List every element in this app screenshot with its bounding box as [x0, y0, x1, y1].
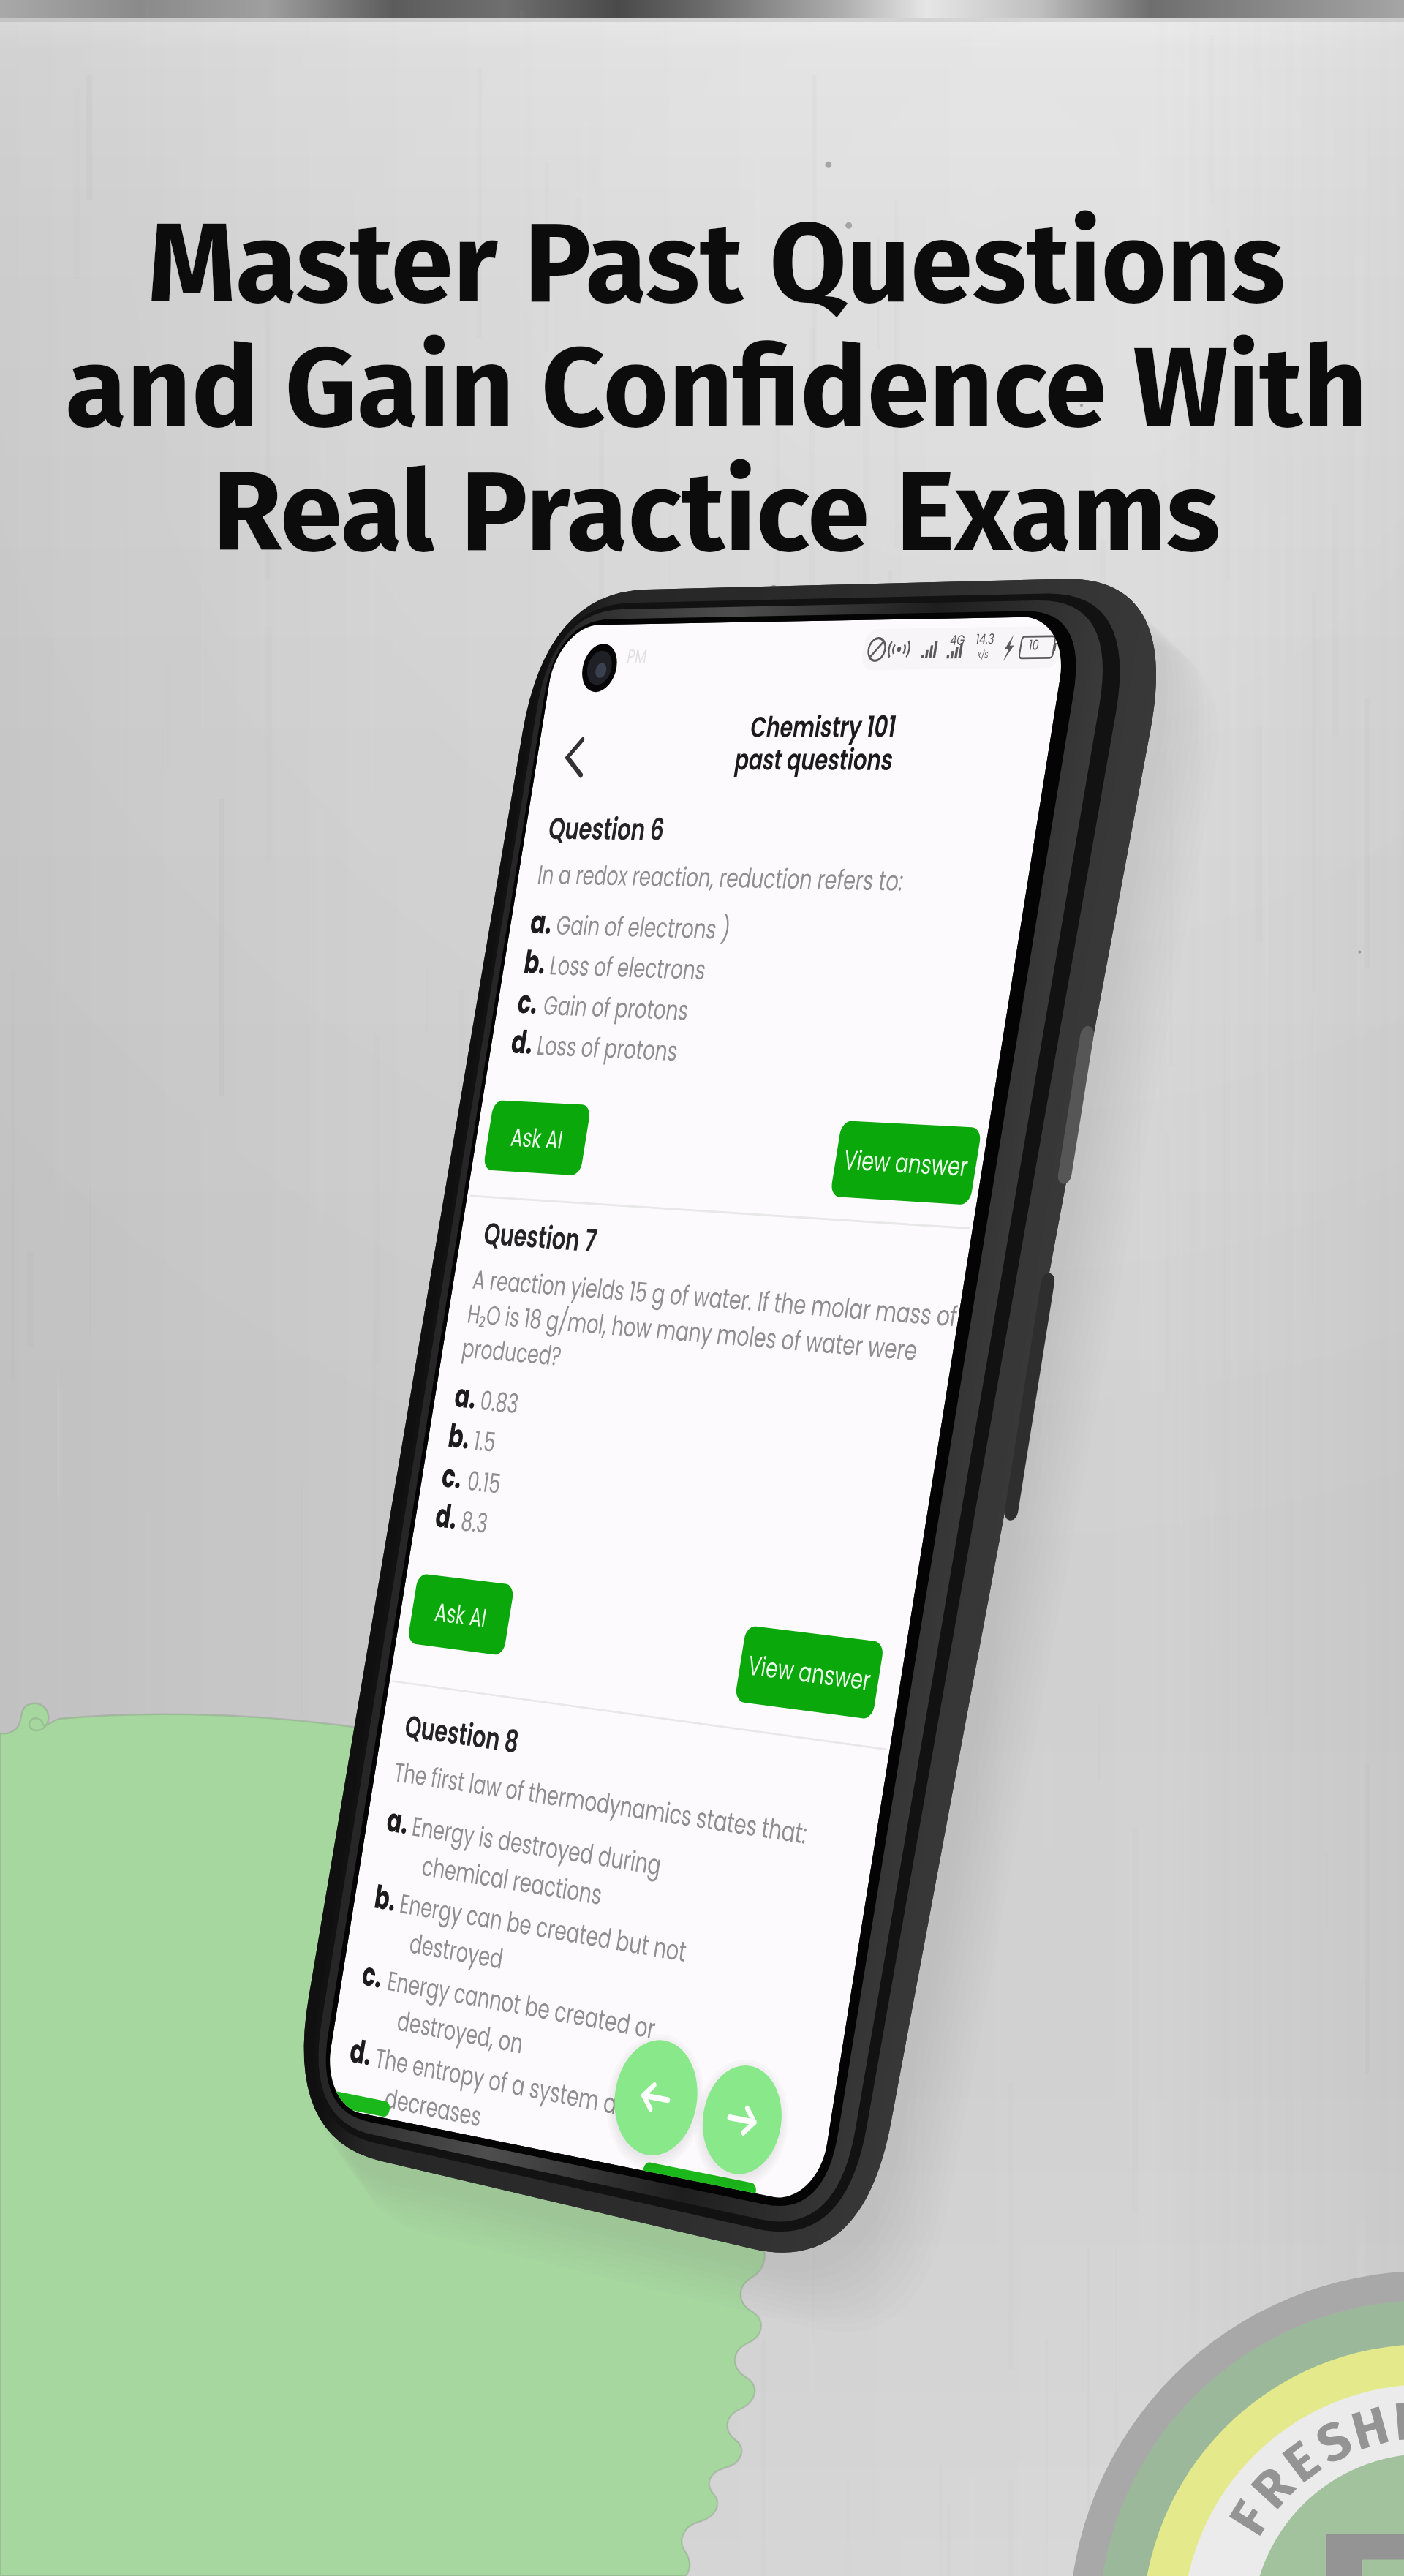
button[interactable]: Back — [0, 0, 1404, 2576]
button[interactable] — [407, 1575, 514, 1657]
button[interactable] — [831, 1117, 983, 1201]
button[interactable] — [734, 1627, 884, 1721]
button[interactable]: Previous question — [606, 2033, 706, 2163]
button[interactable]: Back — [560, 733, 592, 780]
button[interactable]: Next question — [695, 2059, 789, 2182]
button[interactable] — [333, 2054, 437, 2127]
button[interactable] — [483, 1096, 592, 1172]
